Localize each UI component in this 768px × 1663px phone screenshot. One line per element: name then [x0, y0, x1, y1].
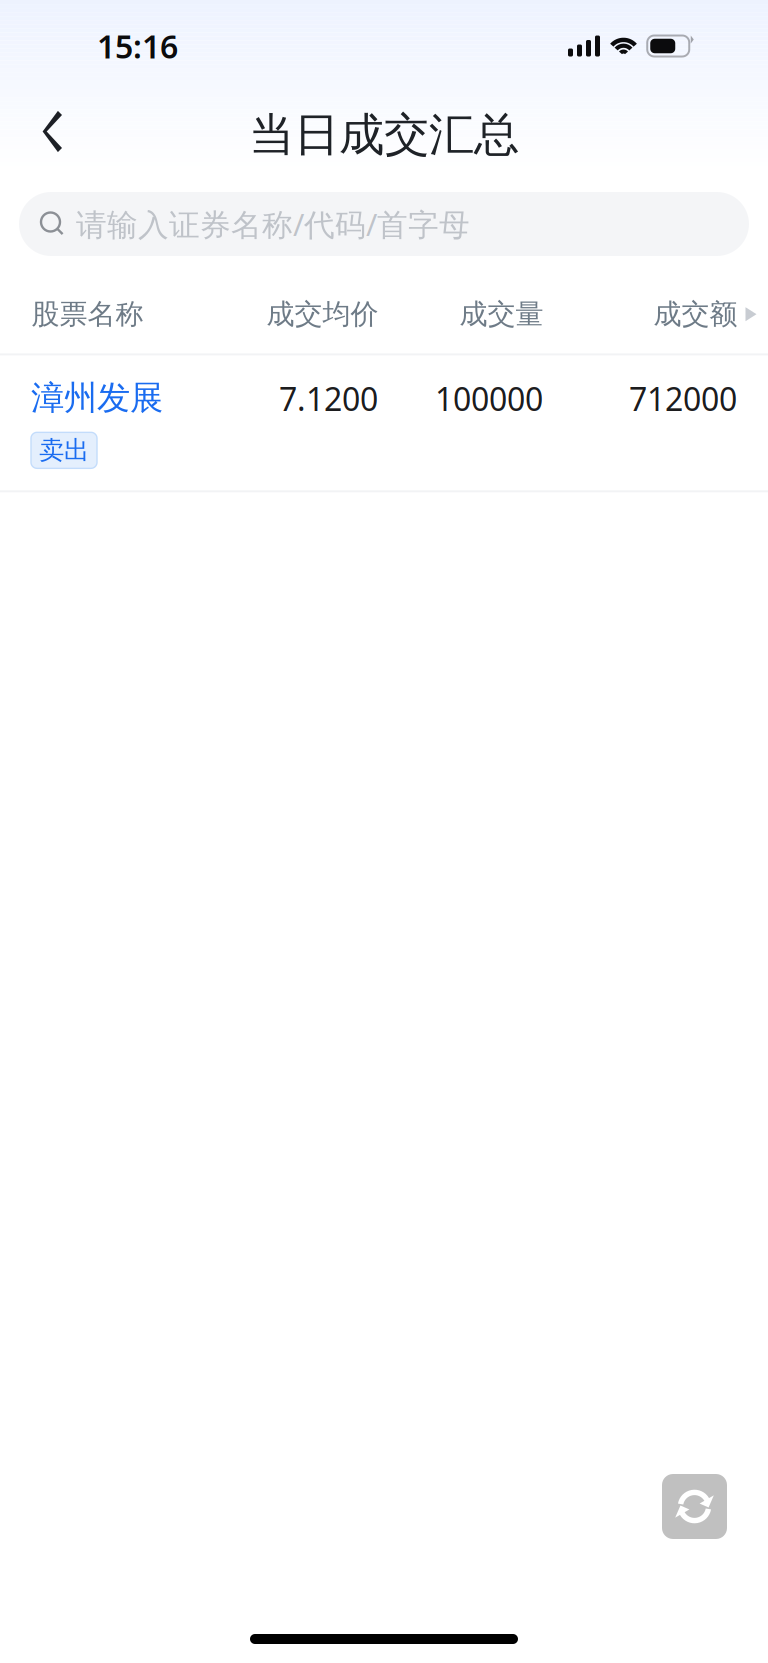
button[interactable]: Refresh [662, 1474, 727, 1539]
staticText: 卖出 [39, 435, 89, 466]
staticText: 请输入证券名称/代码/首字母 [76, 204, 470, 244]
staticText: 股票名称 [31, 297, 143, 331]
staticText: 成交量 [459, 297, 543, 331]
staticText: 100000 [435, 377, 543, 420]
staticText: 15:16 [97, 25, 178, 67]
staticText: 成交额 [653, 297, 737, 331]
staticText: 当日成交汇总 [249, 107, 519, 163]
staticText: 712000 [629, 377, 737, 420]
staticText: 漳州发展 [31, 377, 163, 418]
button[interactable]: Back [22, 102, 82, 168]
staticText: 7.1200 [279, 377, 378, 420]
button[interactable]: 请输入证券名称/代码/首字母 [0, 192, 768, 256]
staticText: 成交均价 [266, 297, 378, 331]
